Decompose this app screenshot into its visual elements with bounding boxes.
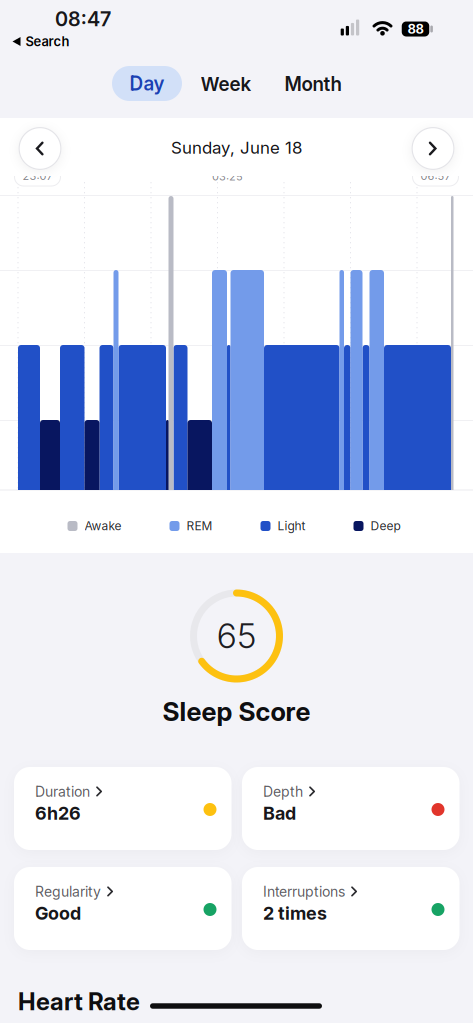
staticText: Awake: [84, 519, 121, 533]
button[interactable]: Week: [200, 73, 251, 95]
staticText: 06:57: [420, 169, 450, 182]
staticText: Bad: [263, 802, 296, 824]
staticText: Sleep Score: [162, 696, 310, 727]
staticText: 88: [407, 21, 423, 37]
staticText: Regularity: [35, 883, 101, 900]
staticText: Good: [35, 902, 81, 924]
staticText: REM: [186, 519, 212, 533]
button[interactable]: [18, 127, 61, 170]
staticText: Sunday, June 18: [171, 137, 302, 158]
staticText: Depth: [263, 783, 303, 800]
staticText: 23:07: [22, 169, 52, 182]
staticText: Deep: [370, 519, 400, 533]
staticText: Month: [284, 73, 341, 95]
button[interactable]: Duration: [14, 767, 231, 850]
staticText: 2 times: [263, 902, 327, 924]
button[interactable]: [411, 127, 454, 170]
button[interactable]: Interruptions: [242, 867, 459, 950]
staticText: Interruptions: [263, 883, 345, 900]
staticText: 6h26: [35, 802, 81, 824]
button[interactable]: Day: [112, 66, 182, 101]
button[interactable]: Regularity: [14, 867, 231, 950]
staticText: Duration: [35, 783, 90, 800]
staticText: Heart Rate: [18, 987, 140, 1016]
staticText: Search: [25, 34, 69, 49]
button[interactable]: Search: [12, 34, 69, 49]
staticText: 08:47: [55, 7, 111, 31]
button[interactable]: Depth: [242, 767, 459, 850]
staticText: 03:25: [212, 170, 243, 183]
staticText: Day: [129, 72, 164, 95]
button[interactable]: Month: [284, 73, 341, 95]
staticText: Light: [277, 519, 305, 533]
staticText: 65: [216, 616, 256, 656]
staticText: Week: [200, 73, 251, 95]
